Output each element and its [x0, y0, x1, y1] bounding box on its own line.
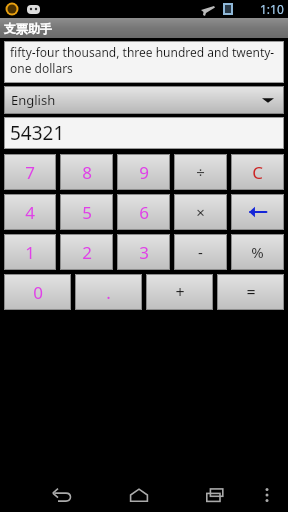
- button[interactable]: 4: [4, 194, 56, 230]
- staticText: 6: [139, 201, 149, 224]
- staticText: ÷: [196, 162, 205, 182]
- staticText: .: [106, 281, 111, 304]
- staticText: ×: [196, 202, 205, 222]
- staticText: 1: [25, 241, 35, 264]
- staticText: 9: [139, 161, 149, 184]
- button[interactable]: C: [231, 154, 284, 190]
- button[interactable]: ×: [174, 194, 227, 230]
- button[interactable]: More options: [252, 478, 282, 512]
- staticText: %: [251, 242, 264, 262]
- staticText: 8: [82, 161, 92, 184]
- staticText: fifty-four thousand, three hundred and t…: [10, 44, 284, 76]
- button[interactable]: 9: [117, 154, 170, 190]
- staticText: English: [11, 91, 56, 109]
- staticText: 2: [82, 241, 92, 264]
- button[interactable]: =: [217, 274, 284, 310]
- button[interactable]: 5: [60, 194, 113, 230]
- staticText: 0: [33, 281, 43, 304]
- button[interactable]: Backspace: [231, 194, 284, 230]
- staticText: 1:10: [260, 1, 284, 17]
- button[interactable]: 2: [60, 234, 113, 270]
- button[interactable]: Recent apps: [194, 478, 238, 512]
- staticText: +: [175, 281, 185, 303]
- staticText: 3: [139, 241, 149, 264]
- staticText: 7: [25, 161, 35, 184]
- staticText: 5: [82, 201, 92, 224]
- button[interactable]: Back: [40, 478, 84, 512]
- staticText: C: [252, 161, 263, 184]
- staticText: 支票助手: [4, 21, 52, 36]
- button[interactable]: 3: [117, 234, 170, 270]
- button[interactable]: 6: [117, 194, 170, 230]
- button[interactable]: 8: [60, 154, 113, 190]
- button[interactable]: -: [174, 234, 227, 270]
- staticText: =: [246, 281, 256, 303]
- staticText: -: [198, 242, 203, 262]
- button[interactable]: 0: [4, 274, 71, 310]
- staticText: 4: [25, 201, 35, 224]
- button[interactable]: .: [75, 274, 142, 310]
- button[interactable]: 7: [4, 154, 56, 190]
- button[interactable]: Home: [117, 478, 161, 512]
- button[interactable]: English: [4, 86, 284, 114]
- button[interactable]: %: [231, 234, 284, 270]
- button[interactable]: +: [146, 274, 213, 310]
- button[interactable]: ÷: [174, 154, 227, 190]
- staticText: 54321: [10, 120, 65, 146]
- button[interactable]: 1: [4, 234, 56, 270]
